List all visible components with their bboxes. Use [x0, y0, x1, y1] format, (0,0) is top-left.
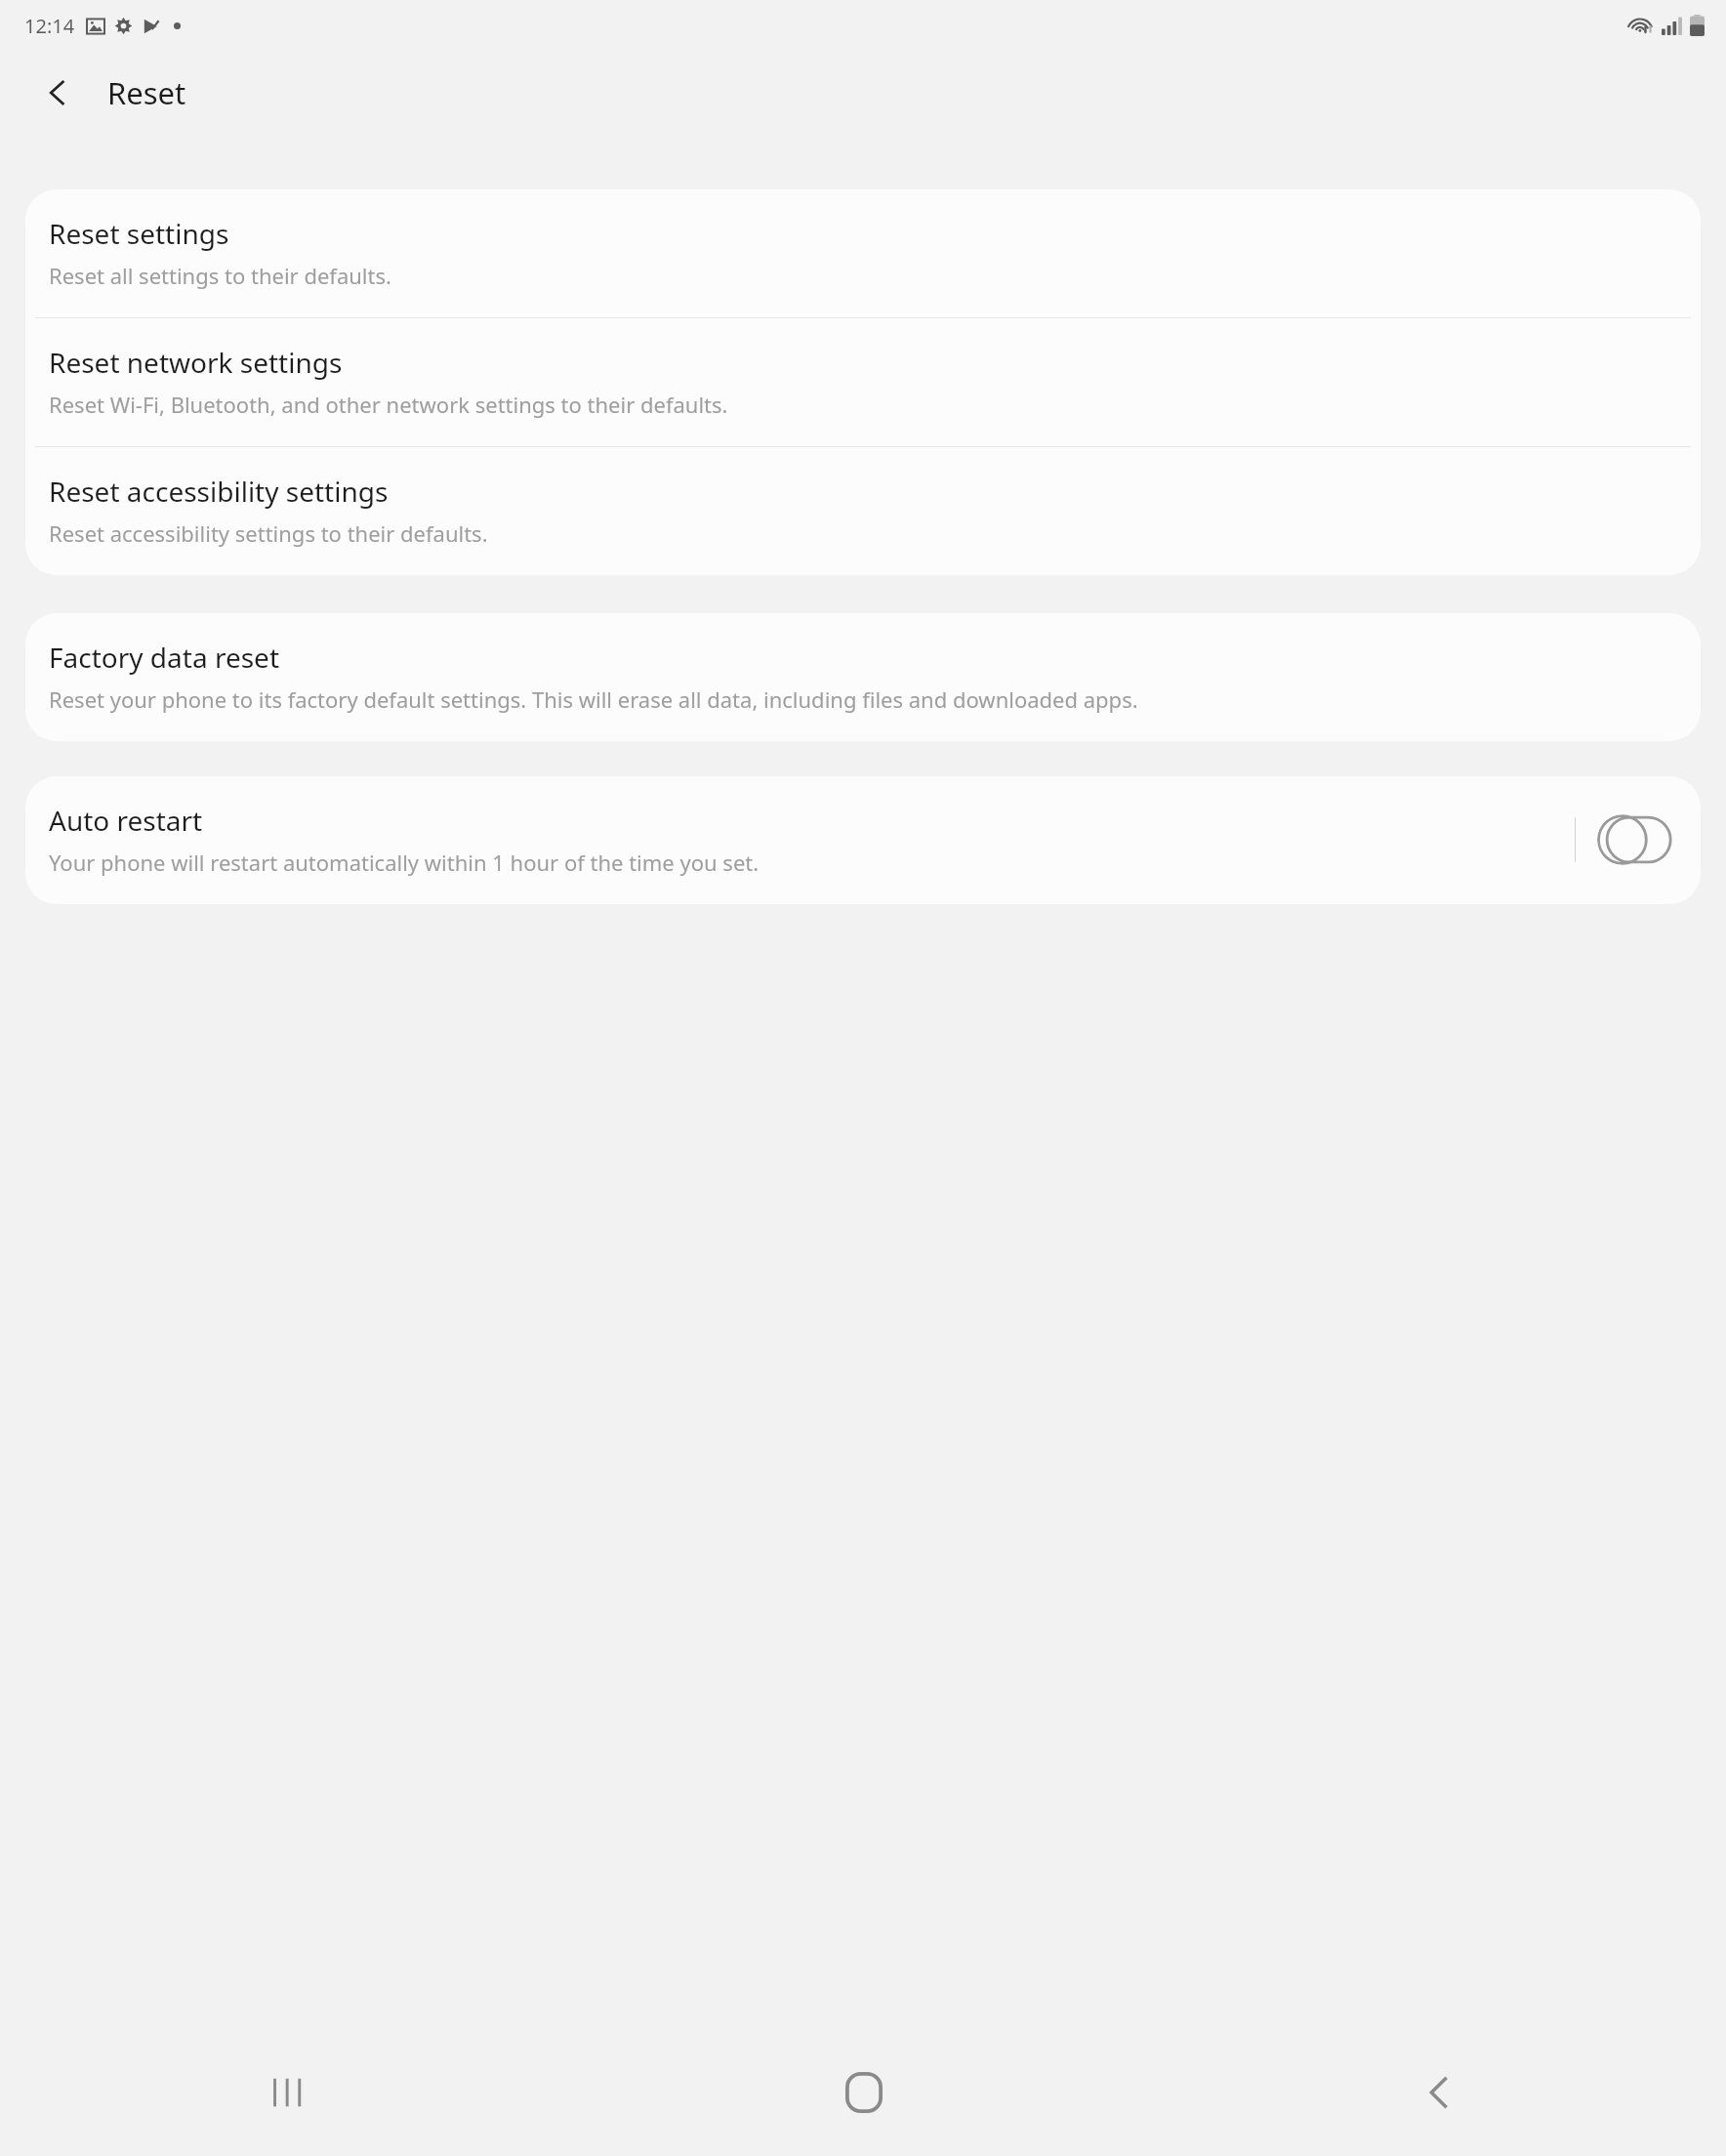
staticText: Reset all settings to their defaults. — [49, 261, 391, 290]
button[interactable]: Back — [27, 62, 90, 124]
staticText: Reset — [107, 72, 186, 113]
button[interactable]: Reset settings — [25, 189, 1701, 317]
button[interactable]: Reset accessibility settings — [25, 447, 1701, 575]
button[interactable]: Back — [1151, 2029, 1726, 2156]
button[interactable]: Recent apps — [0, 2029, 576, 2156]
staticText: Your phone will restart automatically wi… — [49, 848, 760, 877]
staticText: Reset your phone to its factory default … — [49, 684, 1138, 714]
staticText: Auto restart — [49, 802, 203, 839]
staticText: Reset accessibility settings — [49, 473, 389, 510]
staticText: Reset network settings — [49, 344, 343, 381]
button[interactable]: Auto restart — [25, 776, 1701, 904]
button[interactable]: Auto restart toggle, off — [1597, 814, 1673, 865]
staticText: Reset settings — [49, 215, 229, 252]
staticText: Factory data reset — [49, 639, 279, 676]
button[interactable]: Factory data reset — [25, 613, 1701, 741]
staticText: 12:14 — [24, 13, 75, 39]
staticText: Reset accessibility settings to their de… — [49, 518, 488, 548]
staticText: Reset Wi-Fi, Bluetooth, and other networ… — [49, 390, 728, 419]
button[interactable]: Home — [576, 2029, 1151, 2156]
button[interactable]: Reset network settings — [25, 318, 1701, 446]
